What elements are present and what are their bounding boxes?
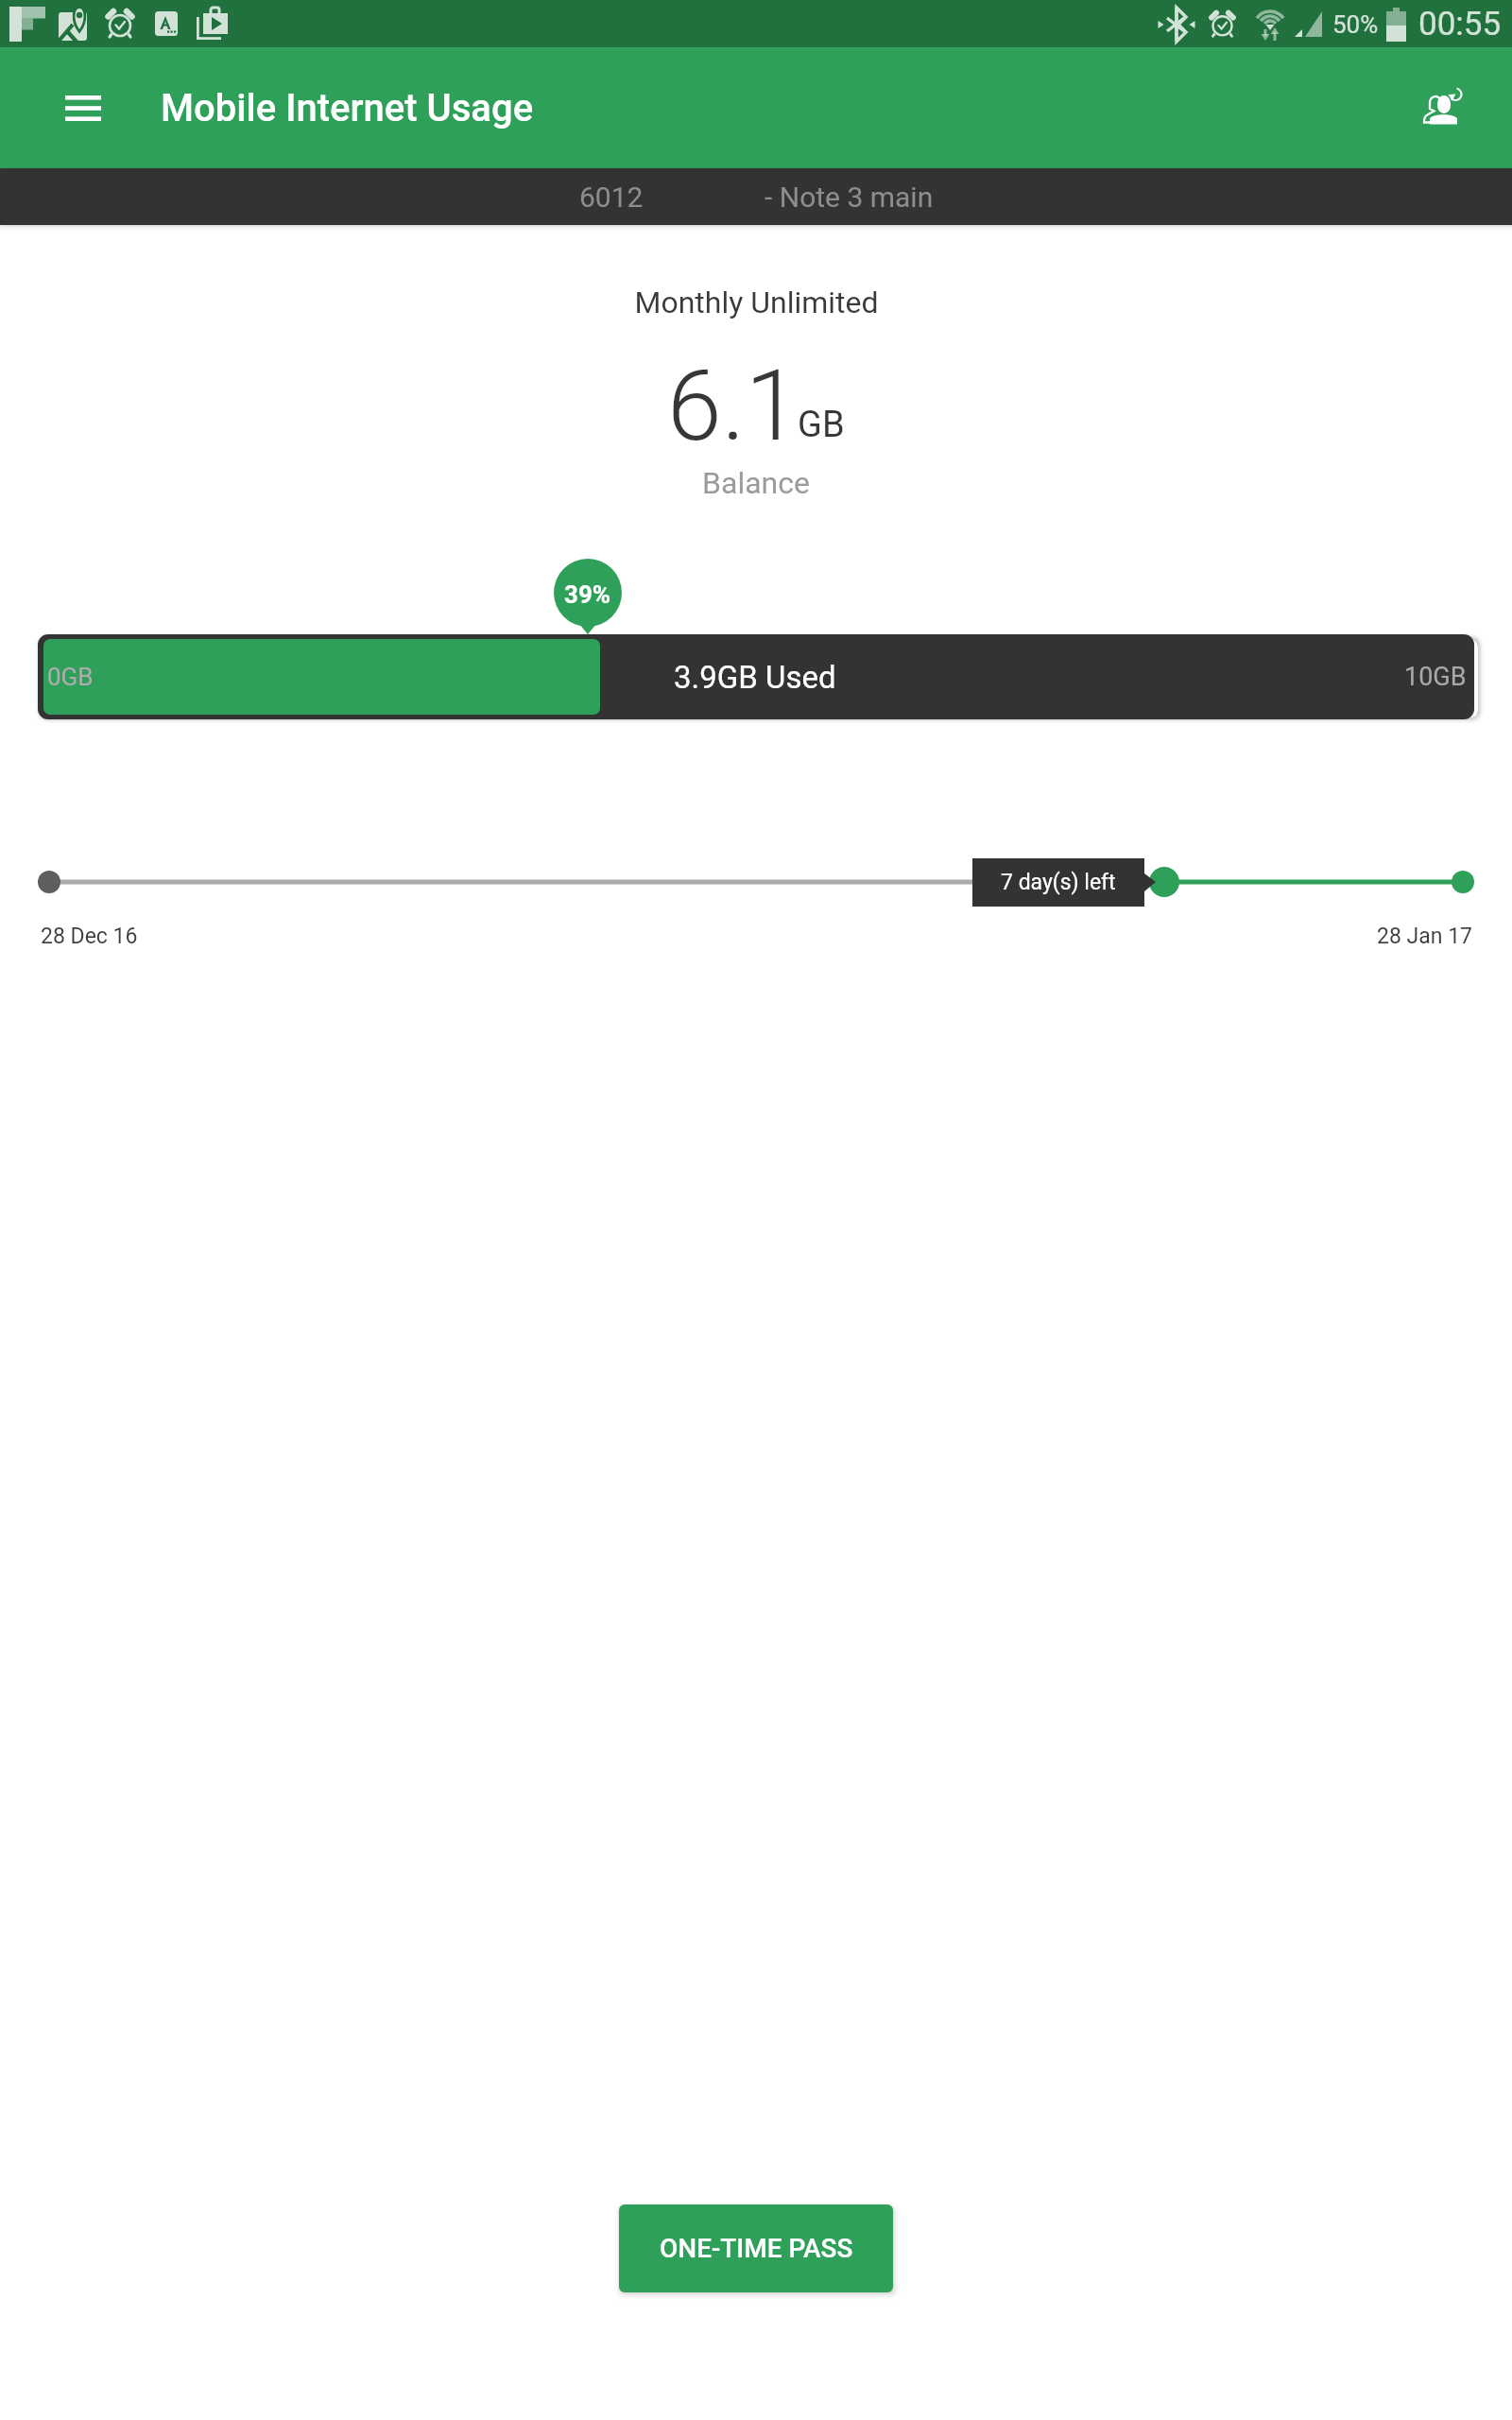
staticText: ONE-TIME PASS: [660, 2233, 853, 2264]
staticText: 00:55: [1418, 5, 1502, 43]
staticText: 0GB: [47, 663, 94, 691]
staticText: 39%: [564, 580, 611, 609]
staticText: 3.9GB Used: [674, 659, 836, 696]
staticText: 10GB: [1404, 662, 1467, 692]
staticText: Monthly Unlimited: [634, 285, 879, 320]
staticText: GB: [798, 404, 845, 446]
button[interactable]: ONE-TIME PASS: [619, 2204, 893, 2292]
button[interactable]: Open navigation drawer: [53, 78, 113, 138]
staticText: 7 day(s) left: [1001, 870, 1116, 895]
button[interactable]: Switch account: [1406, 72, 1478, 144]
staticText: - Note 3 main: [765, 181, 934, 214]
staticText: Balance: [702, 465, 810, 501]
staticText: 6012: [579, 181, 644, 214]
staticText: Mobile Internet Usage: [161, 86, 534, 130]
staticText: 6.1: [667, 349, 800, 464]
staticText: 50%: [1332, 10, 1379, 39]
staticText: 28 Dec 16: [41, 924, 138, 949]
staticText: 28 Jan 17: [1377, 924, 1473, 949]
